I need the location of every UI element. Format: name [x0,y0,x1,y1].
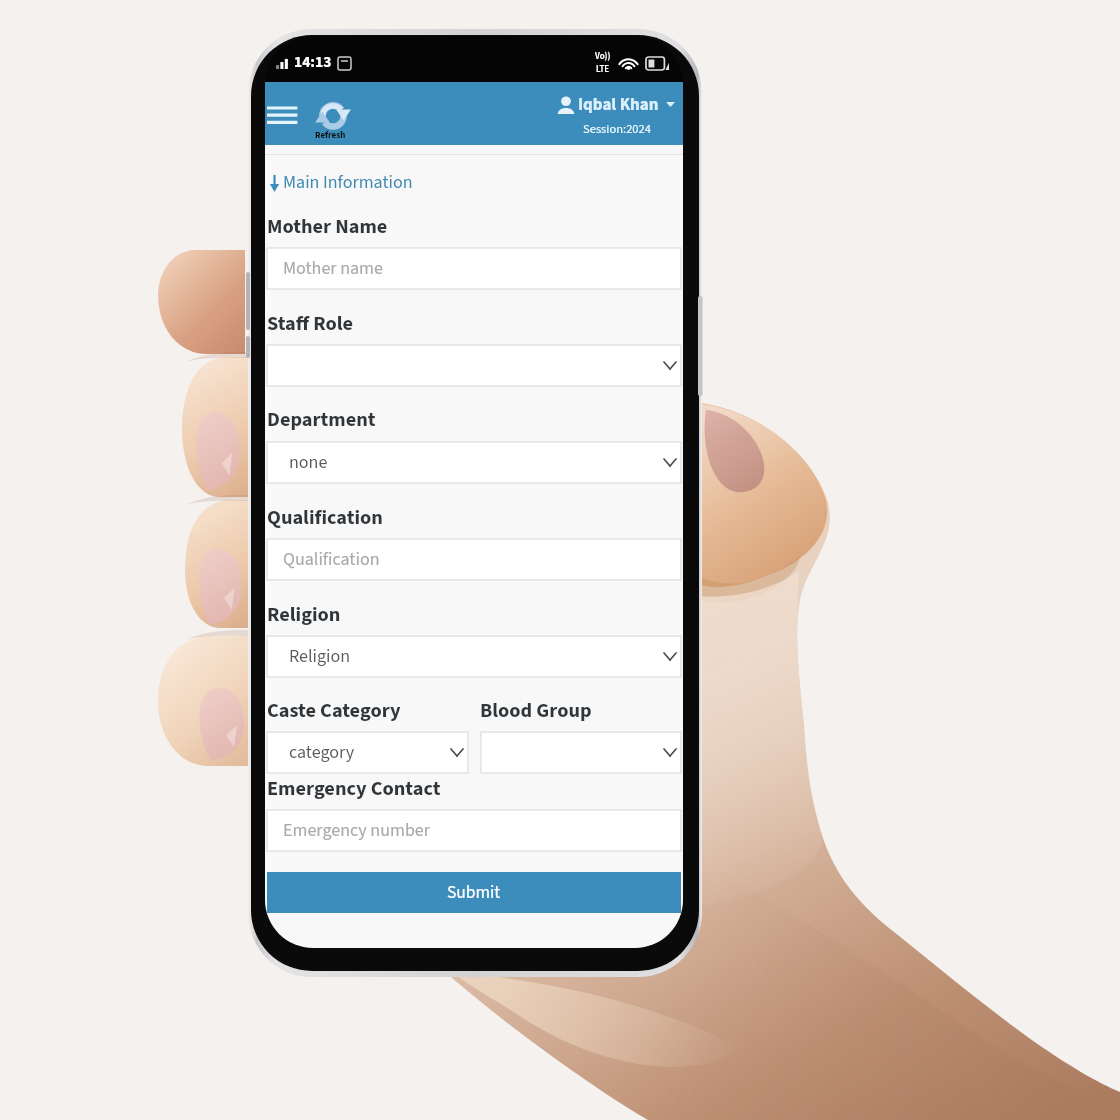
staticText: Blood Group [480,696,592,725]
button[interactable]: none [267,442,681,483]
staticText: Emergency Contact [267,774,441,803]
button[interactable]: Main Information [268,170,413,196]
staticText: Mother name [283,256,383,282]
staticText: Qualification [267,503,383,532]
staticText: Department [267,405,376,434]
button[interactable]: Iqbal Khan [555,90,683,138]
button[interactable] [481,732,681,773]
staticText: Mother Name [267,212,388,241]
staticText: Refresh [315,129,346,142]
staticText: Main Information [283,170,413,196]
staticText: Staff Role [267,309,353,338]
staticText: Caste Category [267,696,401,725]
staticText: Session:2024 [583,120,652,138]
staticText: Submit [447,880,501,905]
staticText: Vo)) [595,50,611,63]
button[interactable]: Emergency number [267,810,681,851]
button[interactable]: Submit [267,872,681,913]
staticText: Emergency number [283,818,431,844]
button[interactable]: Qualification [267,539,681,580]
staticText: Iqbal Khan [578,93,659,117]
button[interactable]: Religion [267,636,681,677]
button[interactable]: Mother name [267,248,681,289]
staticText: Religion [267,600,341,629]
staticText: LTE [596,63,610,76]
staticText: category [289,740,355,766]
button[interactable]: category [267,732,468,773]
button[interactable]: Refresh [311,96,357,142]
staticText: none [289,450,328,476]
staticText: Religion [289,644,351,670]
staticText: 14:13 [294,51,332,73]
staticText: Qualification [283,547,380,573]
button[interactable] [267,345,681,386]
button[interactable]: Menu [265,89,309,131]
